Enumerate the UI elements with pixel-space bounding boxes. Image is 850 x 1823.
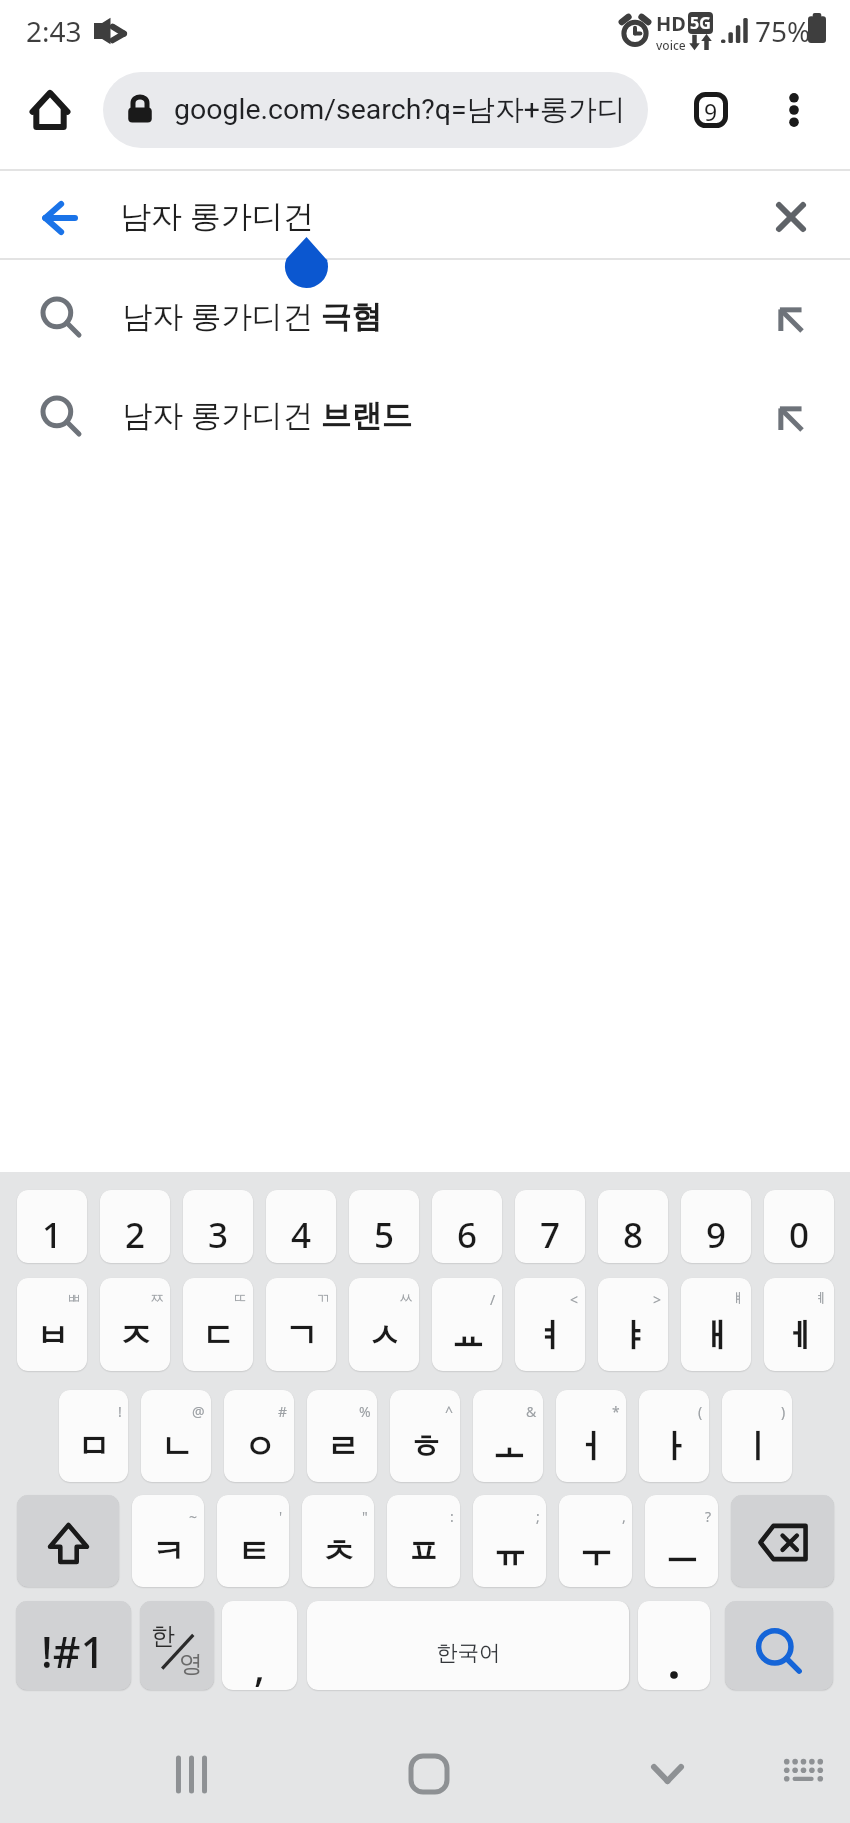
button[interactable]: Insert suggestion <box>766 295 814 343</box>
staticText: " <box>362 1507 368 1526</box>
button[interactable]: 4 <box>266 1190 336 1263</box>
staticText: ㅆ <box>399 1290 413 1308</box>
button[interactable]: Back <box>30 189 88 247</box>
staticText: 영 <box>179 1649 203 1679</box>
button[interactable]: < <box>515 1278 585 1371</box>
staticText: 7 <box>540 1211 561 1259</box>
staticText: ㄲ <box>316 1290 330 1308</box>
button[interactable]: 5 <box>349 1190 419 1263</box>
button[interactable]: ㅉ <box>100 1278 170 1371</box>
button[interactable]: Insert suggestion <box>766 394 814 442</box>
button[interactable]: 3 <box>183 1190 253 1263</box>
staticText: 한국어 <box>436 1639 501 1666</box>
button[interactable]: ' <box>217 1495 289 1587</box>
staticText: ㅡ <box>665 1531 698 1573</box>
button[interactable]: ! <box>59 1390 128 1482</box>
button[interactable]: More options <box>768 84 820 136</box>
button[interactable]: # <box>224 1390 294 1482</box>
button[interactable]: !#1 <box>16 1601 131 1690</box>
staticText: ㅜ <box>579 1531 612 1573</box>
button[interactable]: * <box>556 1390 626 1482</box>
staticText: ㄹ <box>326 1426 359 1468</box>
button[interactable]: Hide keyboard <box>621 1728 713 1820</box>
staticText: ㅐ <box>700 1315 733 1357</box>
button[interactable]: ( <box>639 1390 709 1482</box>
staticText: HD <box>656 10 686 37</box>
staticText: 5G <box>690 12 711 34</box>
staticText: ㅈ <box>119 1315 152 1357</box>
button[interactable]: Korean / English <box>140 1601 214 1690</box>
button[interactable]: : <box>387 1495 460 1587</box>
button[interactable]: 9 <box>681 1190 751 1263</box>
button[interactable]: " <box>302 1495 374 1587</box>
button[interactable]: Tabs <box>682 81 740 139</box>
button[interactable]: ㄲ <box>266 1278 336 1371</box>
button[interactable]: > <box>598 1278 668 1371</box>
button[interactable]: ㄸ <box>183 1278 253 1371</box>
button[interactable]: ~ <box>132 1495 204 1587</box>
other: Search <box>758 1630 800 1672</box>
button[interactable]: @ <box>141 1390 211 1482</box>
staticText: ; <box>536 1507 540 1526</box>
staticText: @ <box>192 1402 205 1421</box>
button[interactable]: 6 <box>432 1190 502 1263</box>
button[interactable]: % <box>307 1390 377 1482</box>
staticText: ㅣ <box>741 1426 774 1468</box>
staticText: google.com/search?q=남자+롱가디건& <box>174 92 648 128</box>
button[interactable] <box>638 1601 710 1690</box>
button[interactable]: 1 <box>17 1190 87 1263</box>
button[interactable]: Recent apps <box>145 1728 237 1820</box>
staticText: voice <box>656 37 686 53</box>
button[interactable]: / <box>432 1278 502 1371</box>
button[interactable]: ㅃ <box>17 1278 87 1371</box>
button[interactable]: Search <box>725 1601 833 1690</box>
staticText: ㅂ <box>36 1315 69 1357</box>
button[interactable]: Shift <box>17 1495 119 1587</box>
button[interactable]: 8 <box>598 1190 668 1263</box>
button[interactable]: Clear search <box>763 189 819 245</box>
button[interactable]: 한국어 <box>307 1601 629 1690</box>
button[interactable]: 2 <box>100 1190 170 1263</box>
button[interactable]: Switch keyboard <box>761 1728 845 1812</box>
staticText: ㅏ <box>658 1426 691 1468</box>
button[interactable]: ? <box>645 1495 718 1587</box>
staticText: ㅋ <box>152 1531 185 1573</box>
button[interactable]: Home <box>18 78 82 142</box>
staticText: ㄸ <box>233 1290 247 1308</box>
staticText: , <box>622 1507 626 1526</box>
staticText: 남자 롱가디건 브랜드 <box>122 393 413 435</box>
staticText: 2:43 <box>26 12 82 50</box>
staticText: ㅒ <box>731 1290 745 1308</box>
button[interactable]: google.com/search?q=남자+롱가디건& <box>103 72 648 148</box>
button[interactable]: ㅆ <box>349 1278 419 1371</box>
other: Shift <box>48 1523 89 1564</box>
staticText: 8 <box>623 1211 644 1259</box>
button[interactable]: , <box>222 1601 297 1690</box>
button[interactable]: ㅖ <box>764 1278 834 1371</box>
button[interactable]: ; <box>473 1495 546 1587</box>
button[interactable]: 7 <box>515 1190 585 1263</box>
staticText: ㄷ <box>202 1315 235 1357</box>
button[interactable]: , <box>559 1495 632 1587</box>
staticText: 5 <box>374 1211 395 1259</box>
staticText: 75% <box>755 12 811 50</box>
staticText: ㅍ <box>407 1531 440 1573</box>
button[interactable]: 남자 롱가디건 극혐 <box>0 265 850 363</box>
button[interactable]: Home <box>383 1728 475 1820</box>
button[interactable]: ㅒ <box>681 1278 751 1371</box>
staticText: 9 <box>704 96 718 127</box>
staticText: # <box>278 1402 288 1421</box>
button[interactable]: & <box>473 1390 543 1482</box>
staticText: 6 <box>457 1211 478 1259</box>
staticText: ㅠ <box>493 1531 526 1573</box>
button[interactable]: 남자 롱가디건 브랜드 <box>0 364 850 462</box>
staticText: ㄱ <box>285 1315 318 1357</box>
button[interactable]: 0 <box>764 1190 834 1263</box>
other: Backspace <box>759 1524 807 1561</box>
staticText: 남자 롱가디건 극혐 <box>122 294 382 336</box>
staticText: !#1 <box>41 1622 106 1681</box>
button[interactable]: Backspace <box>731 1495 834 1587</box>
button[interactable]: ) <box>722 1390 792 1482</box>
staticText: ㅊ <box>322 1531 355 1573</box>
button[interactable]: ^ <box>390 1390 460 1482</box>
